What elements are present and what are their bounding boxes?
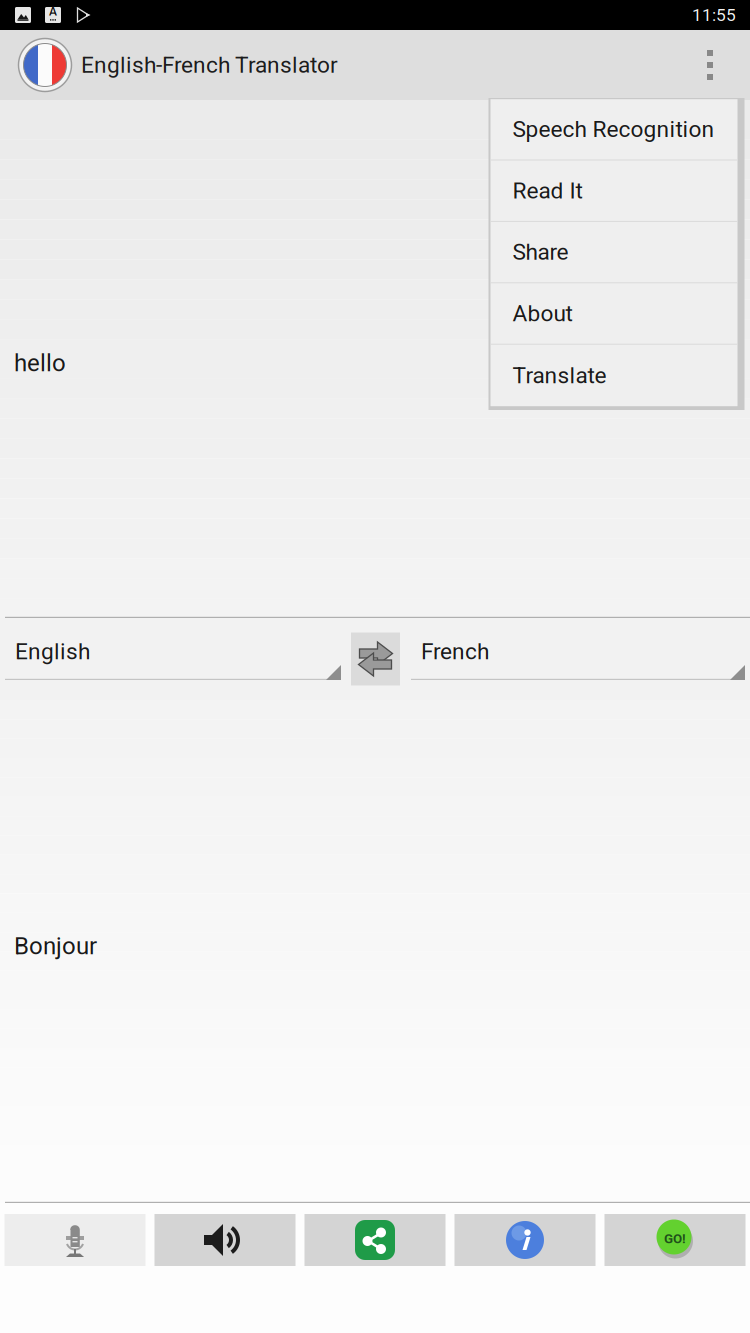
button[interactable]: hello [0, 100, 750, 618]
button[interactable]: About [454, 1214, 595, 1266]
button[interactable]: Bonjour [0, 700, 750, 1203]
staticText: About [512, 300, 572, 327]
button[interactable]: Share [490, 222, 737, 283]
staticText: French [421, 638, 489, 665]
button[interactable]: Swap languages [351, 632, 400, 685]
button[interactable]: Read it aloud [154, 1214, 295, 1266]
staticText: A [49, 4, 57, 19]
button[interactable]: Speech recognition [4, 1214, 145, 1266]
button[interactable]: Translate [490, 345, 737, 406]
button[interactable]: More options [682, 30, 738, 100]
staticText: Read It [512, 177, 582, 204]
button[interactable]: Share [304, 1214, 445, 1266]
button[interactable]: English [5, 618, 341, 700]
staticText: Bonjour [14, 932, 97, 960]
button[interactable]: French [411, 618, 745, 700]
button[interactable]: About [490, 283, 737, 345]
staticText: Share [512, 239, 568, 265]
staticText: Speech Recognition [512, 116, 714, 143]
button[interactable]: Read It [490, 160, 737, 222]
button[interactable]: Speech Recognition [490, 99, 737, 160]
staticText: 11:55 [692, 5, 736, 25]
staticText: hello [14, 349, 66, 377]
staticText: English [15, 638, 90, 665]
staticText: GO! [664, 1231, 686, 1247]
button[interactable]: Translate [604, 1214, 745, 1266]
staticText: Translate [512, 362, 606, 389]
staticText: English-French Translator [81, 52, 338, 78]
